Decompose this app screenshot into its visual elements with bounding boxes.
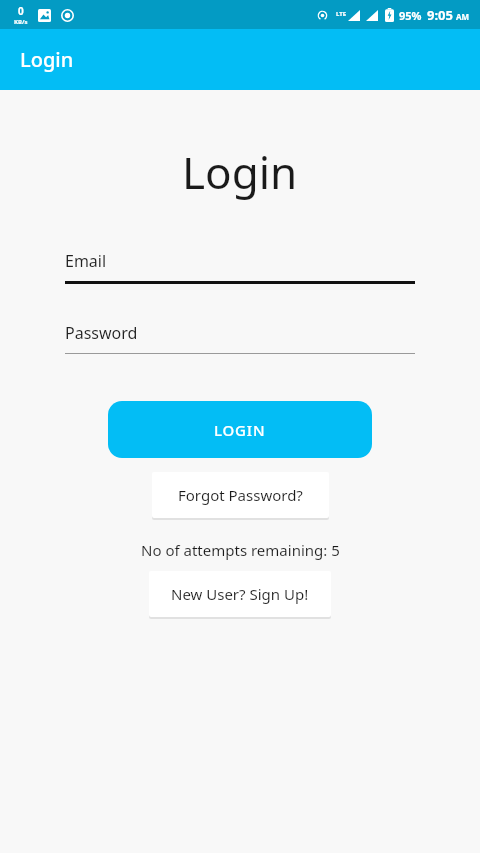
staticText: LTE xyxy=(336,10,347,18)
staticText: 95% xyxy=(399,8,422,23)
staticText: Login xyxy=(20,46,74,73)
staticText: New User? Sign Up! xyxy=(171,584,309,604)
button[interactable]: Email xyxy=(65,250,415,284)
staticText: No of attempts remaining: 5 xyxy=(141,540,340,560)
staticText: KB/s xyxy=(14,18,28,26)
button[interactable]: LOGIN xyxy=(108,401,372,458)
staticText: 9:05 xyxy=(427,6,453,24)
button[interactable]: Password xyxy=(65,322,415,354)
staticText: LOGIN xyxy=(214,420,266,440)
button[interactable]: Forgot Password? xyxy=(152,472,329,518)
staticText: AM xyxy=(456,11,470,22)
staticText: Forgot Password? xyxy=(178,485,303,505)
staticText: Password xyxy=(65,322,138,344)
staticText: Login xyxy=(182,142,298,202)
staticText: Email xyxy=(65,250,107,272)
staticText: 0 xyxy=(18,4,24,18)
button[interactable]: New User? Sign Up! xyxy=(149,571,331,617)
